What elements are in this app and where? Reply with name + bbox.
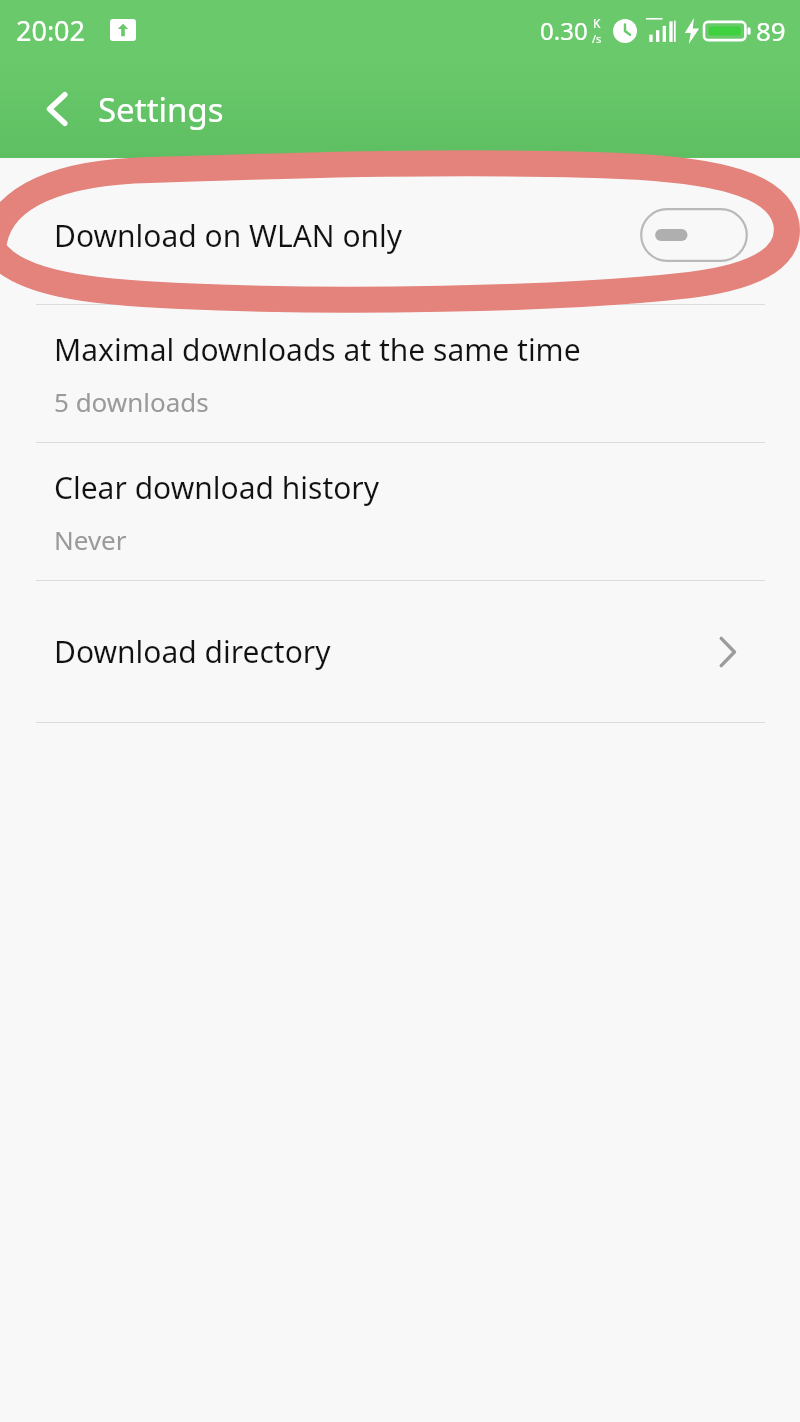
staticText: 20:02 [16,12,86,49]
staticText: 0.30 [540,14,588,47]
button[interactable]: Clear download history [0,443,800,580]
staticText: Download on WLAN only [54,215,640,256]
staticText: /s [592,31,602,46]
button[interactable]: Back [30,81,86,137]
button[interactable]: Download on WLAN only toggle, off [640,208,748,262]
button[interactable]: Download on WLAN only [0,166,800,304]
button[interactable]: Download directory [0,581,800,722]
staticText: Settings [98,87,224,132]
staticText: Never [54,522,127,557]
staticText: 89 [756,13,786,48]
staticText: Maximal downloads at the same time [54,329,581,370]
button[interactable]: Maximal downloads at the same time [0,305,800,442]
staticText: Download directory [54,631,710,672]
staticText: 5 downloads [54,384,209,419]
staticText: K [593,15,601,31]
staticText: Clear download history [54,467,380,508]
